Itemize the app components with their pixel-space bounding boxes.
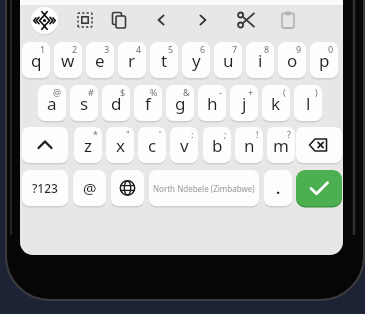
button[interactable]: r — [118, 42, 146, 78]
staticText: + — [248, 86, 254, 98]
staticText: % — [150, 86, 158, 98]
staticText: ( — [283, 86, 286, 98]
staticText: e — [95, 49, 105, 72]
button[interactable]: f — [134, 85, 162, 121]
button[interactable]: m — [267, 127, 295, 163]
button[interactable]: n — [235, 127, 263, 163]
staticText: t — [161, 49, 168, 72]
button[interactable] — [31, 7, 58, 34]
staticText: q — [31, 49, 42, 72]
staticText: North Ndebele (Zimbabwe) — [153, 183, 255, 194]
staticText: r — [128, 49, 136, 72]
staticText: # — [88, 86, 94, 98]
button[interactable]: v — [170, 127, 198, 163]
staticText: m — [273, 134, 289, 157]
button[interactable]: e — [86, 42, 114, 78]
staticText: ? — [287, 128, 291, 140]
staticText: s — [80, 92, 89, 115]
button[interactable] — [68, 3, 102, 37]
button[interactable]: x — [106, 127, 134, 163]
staticText: g — [175, 92, 186, 115]
button[interactable] — [296, 170, 342, 206]
staticText: h — [207, 92, 218, 115]
button[interactable]: o — [278, 42, 306, 78]
staticText: z — [84, 134, 92, 157]
staticText: ) — [315, 86, 318, 98]
staticText: - — [219, 86, 222, 98]
button[interactable]: h — [198, 85, 226, 121]
button[interactable]: i — [246, 42, 274, 78]
staticText: x — [116, 134, 125, 157]
button[interactable]: . — [264, 170, 292, 206]
button[interactable] — [144, 3, 178, 37]
staticText: 0 — [328, 43, 334, 55]
button[interactable]: w — [54, 42, 82, 78]
button[interactable]: t — [150, 42, 178, 78]
staticText: ; — [224, 128, 227, 140]
button[interactable]: z — [74, 127, 102, 163]
staticText: 9 — [296, 43, 302, 55]
button[interactable] — [186, 3, 220, 37]
staticText: 3 — [104, 43, 110, 55]
staticText: * — [93, 128, 98, 140]
button[interactable] — [22, 127, 68, 163]
staticText: b — [212, 134, 223, 157]
staticText: 8 — [264, 43, 270, 55]
staticText: l — [306, 92, 311, 115]
staticText: k — [271, 92, 281, 115]
staticText: j — [242, 92, 247, 115]
button[interactable]: a — [38, 85, 66, 121]
button[interactable]: p — [310, 42, 338, 78]
button[interactable]: q — [22, 42, 50, 78]
button[interactable]: @ — [73, 170, 106, 206]
button[interactable]: c — [138, 127, 166, 163]
button[interactable]: ?123 — [22, 170, 68, 206]
button[interactable]: d — [102, 85, 130, 121]
staticText: @ — [53, 86, 62, 98]
staticText: v — [180, 134, 189, 157]
staticText: 1 — [40, 43, 46, 55]
staticText: ?123 — [32, 180, 58, 196]
button[interactable] — [296, 127, 342, 163]
staticText: d — [111, 92, 122, 115]
staticText: @ — [83, 178, 97, 198]
button[interactable] — [111, 170, 144, 206]
button[interactable]: u — [214, 42, 242, 78]
staticText: 4 — [136, 43, 142, 55]
staticText: i — [258, 49, 263, 72]
button[interactable]: North Ndebele (Zimbabwe) — [149, 170, 259, 206]
staticText: 6 — [200, 43, 206, 55]
staticText: a — [47, 92, 57, 115]
staticText: o — [287, 49, 298, 72]
staticText: w — [61, 49, 75, 72]
staticText: " — [126, 128, 130, 140]
button[interactable] — [271, 3, 305, 37]
staticText: . — [276, 178, 281, 198]
button[interactable] — [102, 3, 136, 37]
staticText: y — [192, 49, 201, 72]
staticText: 7 — [232, 43, 238, 55]
button[interactable]: y — [182, 42, 210, 78]
staticText: ! — [256, 128, 259, 140]
button[interactable]: g — [166, 85, 194, 121]
staticText: u — [223, 49, 234, 72]
staticText: 2 — [72, 43, 78, 55]
staticText: n — [244, 134, 255, 157]
staticText: 5 — [168, 43, 174, 55]
button[interactable]: l — [294, 85, 322, 121]
staticText: : — [191, 128, 194, 140]
staticText: ' — [159, 128, 162, 140]
staticText: c — [148, 134, 157, 157]
button[interactable]: j — [230, 85, 258, 121]
button[interactable] — [229, 3, 263, 37]
button[interactable]: k — [262, 85, 290, 121]
staticText: p — [319, 49, 330, 72]
button[interactable]: b — [203, 127, 231, 163]
staticText: $ — [120, 86, 126, 98]
button[interactable]: s — [70, 85, 98, 121]
staticText: & — [183, 86, 190, 98]
staticText: f — [145, 92, 151, 115]
